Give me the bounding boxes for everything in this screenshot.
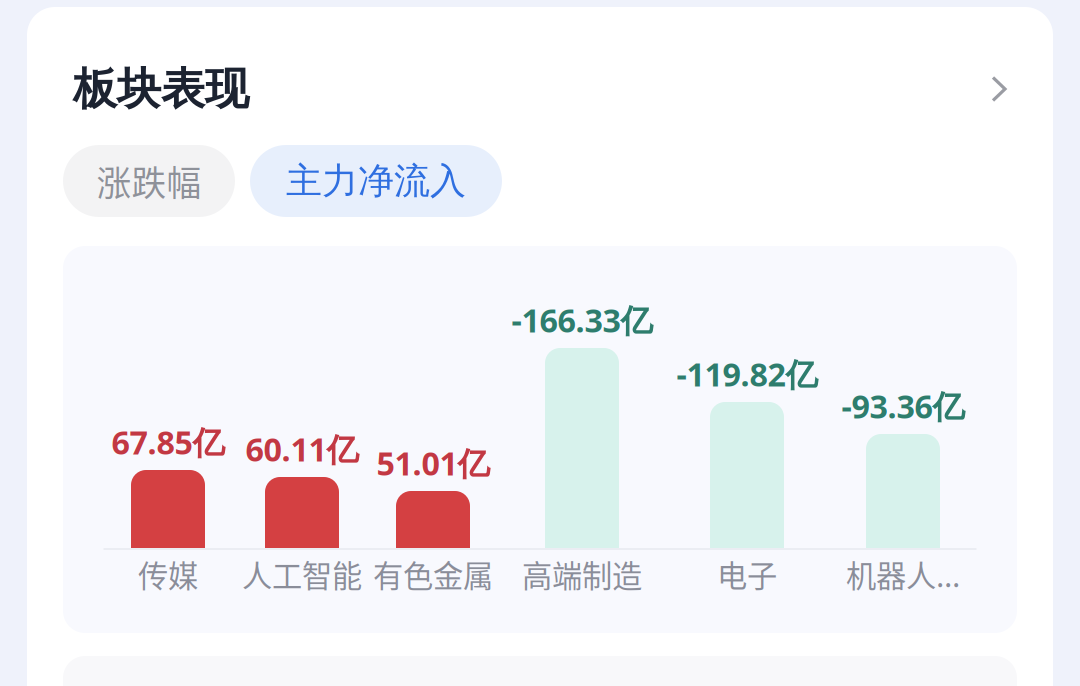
button[interactable]: 高端制造 xyxy=(503,552,660,596)
staticText: -119.82亿 xyxy=(676,352,817,396)
button[interactable]: 电子 xyxy=(673,552,820,596)
staticText: 67.85亿 xyxy=(111,420,224,464)
button[interactable]: 涨跌幅 xyxy=(63,145,235,217)
staticText: 60.11亿 xyxy=(245,427,358,471)
button[interactable]: 主力净流入 xyxy=(250,145,502,217)
staticText: 有色金属 xyxy=(373,552,493,596)
button[interactable]: 传媒 xyxy=(107,552,228,596)
button[interactable]: 人工智能 xyxy=(241,552,362,596)
staticText: 主力净流入 xyxy=(286,158,466,204)
staticText: 传媒 xyxy=(138,552,198,596)
staticText: 电子 xyxy=(717,552,777,596)
staticText: 人工智能 xyxy=(242,552,362,596)
staticText: 涨跌幅 xyxy=(96,156,201,206)
staticText: 51.01亿 xyxy=(376,441,489,485)
button[interactable]: 有色金属 xyxy=(375,552,490,596)
staticText: -166.33亿 xyxy=(511,298,652,342)
staticText: 高端制造 xyxy=(522,552,642,596)
staticText: -93.36亿 xyxy=(841,384,964,428)
button[interactable]: 板块表现 xyxy=(27,63,1053,115)
button[interactable]: 机器人... xyxy=(833,552,972,596)
staticText: 机器人... xyxy=(846,552,960,596)
staticText: 板块表现 xyxy=(73,61,249,117)
